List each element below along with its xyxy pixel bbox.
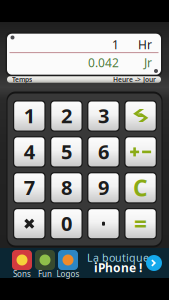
button[interactable] <box>50 208 83 239</box>
staticText: Fun <box>38 269 52 279</box>
staticText: 0 <box>61 210 72 236</box>
staticText: 1 <box>112 36 119 52</box>
button[interactable] <box>87 100 120 132</box>
staticText: = <box>134 209 147 239</box>
button[interactable]: Swap units <box>124 100 157 132</box>
button[interactable] <box>87 172 120 203</box>
button[interactable]: Plus minus <box>124 136 157 168</box>
button[interactable]: Decimal point <box>87 208 120 239</box>
staticText: 2 <box>61 102 72 129</box>
button[interactable]: Multiply <box>13 208 46 239</box>
staticText: Temps <box>12 75 32 84</box>
button[interactable] <box>50 172 83 203</box>
staticText: 0.042 <box>88 54 119 70</box>
staticText: 7 <box>24 174 35 201</box>
staticText: 4 <box>24 138 35 165</box>
staticText: 6 <box>98 138 109 165</box>
staticText: 5 <box>61 138 72 165</box>
button[interactable] <box>13 172 46 203</box>
button[interactable] <box>87 136 120 168</box>
staticText: La boutique <box>87 250 149 265</box>
button[interactable] <box>13 100 46 132</box>
staticText: 8 <box>61 174 72 201</box>
staticText: 9 <box>98 174 109 201</box>
button[interactable] <box>13 136 46 168</box>
staticText: Hr <box>138 36 152 52</box>
staticText: Logos <box>56 269 79 279</box>
staticText: iPhone ! <box>94 259 142 275</box>
button[interactable] <box>50 136 83 168</box>
staticText: Jr <box>144 54 152 70</box>
staticText: Heure -> Jour <box>113 75 156 84</box>
staticText: 3 <box>98 102 109 129</box>
staticText: Sons <box>13 269 31 279</box>
button[interactable] <box>124 172 157 203</box>
button[interactable] <box>50 100 83 132</box>
staticText: C <box>133 173 148 203</box>
button[interactable] <box>124 208 157 239</box>
button[interactable]: Sons <box>0 248 169 278</box>
staticText: 1 <box>24 102 35 129</box>
